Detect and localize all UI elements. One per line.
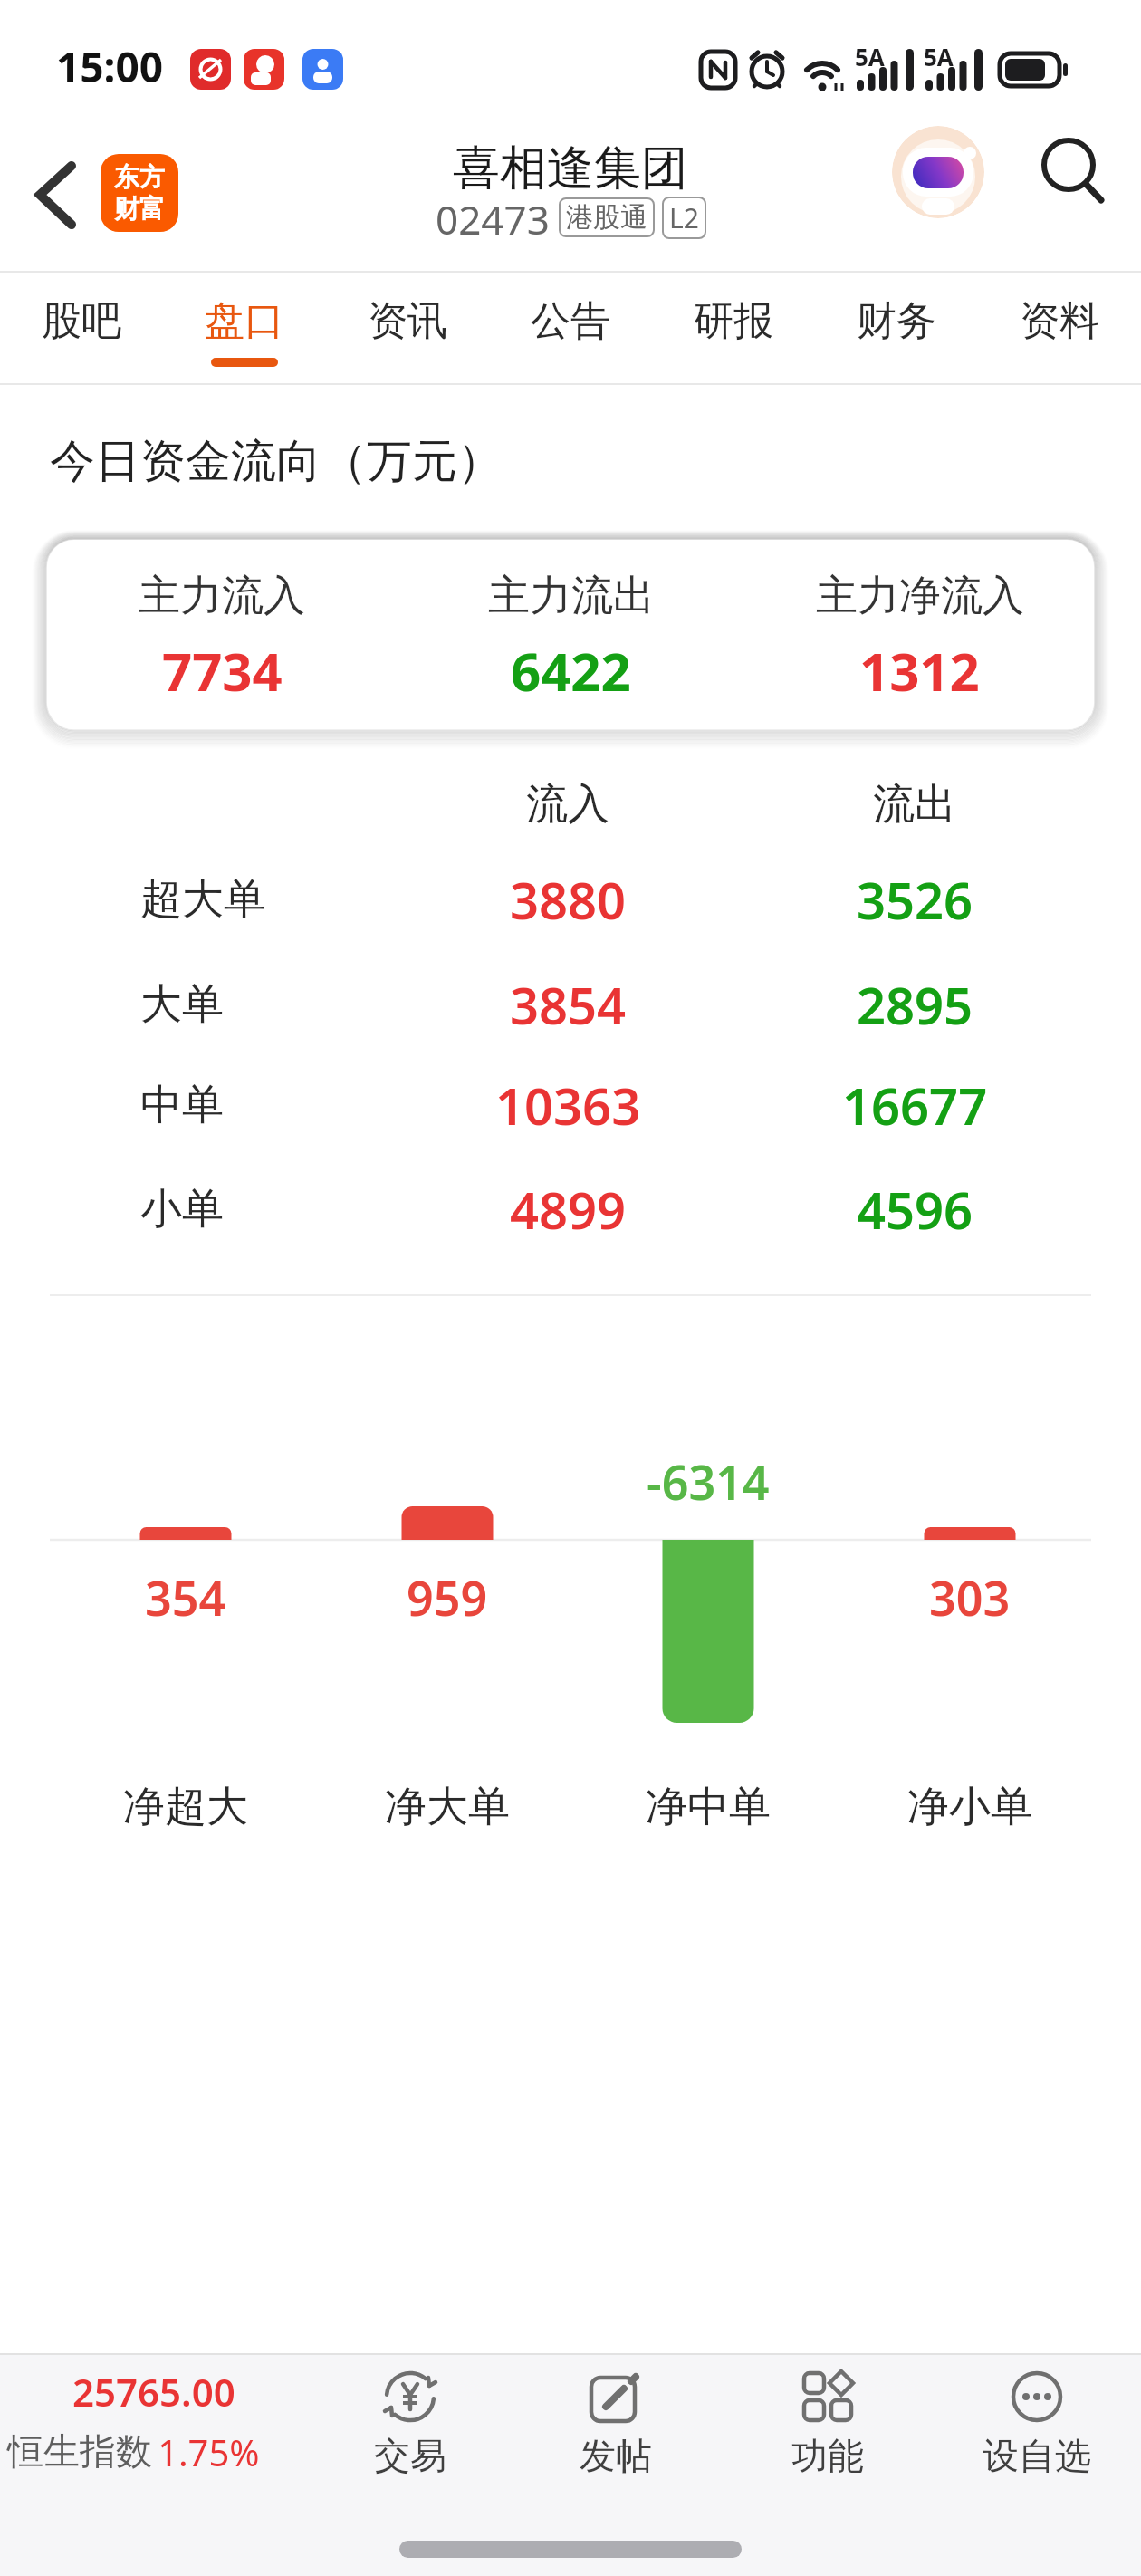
staticText: 4899 [510, 1175, 627, 1244]
staticText: -6314 [647, 1449, 770, 1514]
staticText: 股吧 [42, 296, 121, 346]
staticText: 02473 [436, 192, 550, 243]
staticText: 盘口 [205, 296, 284, 346]
staticText: 10363 [495, 1071, 641, 1139]
staticText: 1312 [859, 635, 980, 706]
staticText: 3854 [510, 970, 627, 1039]
staticText: 354 [145, 1565, 226, 1629]
staticText: 净中单 [646, 1781, 771, 1833]
button[interactable]: 25765.00 [0, 2353, 308, 2507]
staticText: 交易 [374, 2433, 446, 2478]
staticText: 发帖 [580, 2433, 652, 2478]
staticText: 25765.00 [72, 2366, 235, 2417]
staticText: 功能 [791, 2433, 864, 2478]
staticText: 15:00 [56, 38, 164, 95]
staticText: 今日资金流向（万元） [50, 433, 503, 490]
staticText: 港股通 [566, 200, 647, 235]
button[interactable]: 研报 [652, 271, 815, 385]
staticText: 资讯 [368, 296, 447, 346]
staticText: 流入 [526, 778, 609, 831]
staticText: 喜相逢集团 [453, 139, 688, 198]
staticText: 1.75% [158, 2427, 260, 2475]
staticText: 小单 [140, 1183, 224, 1235]
staticText: 研报 [694, 296, 773, 346]
button[interactable]: 功能 [746, 2362, 909, 2498]
staticText: 净小单 [907, 1781, 1032, 1833]
button[interactable]: 股吧 [0, 271, 163, 385]
button[interactable]: 发帖 [534, 2362, 697, 2498]
button[interactable]: 设自选 [955, 2362, 1118, 2498]
staticText: 超大单 [140, 873, 265, 926]
button[interactable] [892, 126, 984, 218]
staticText: 主力流出 [488, 570, 655, 622]
staticText: 959 [407, 1565, 488, 1629]
staticText: 主力流入 [139, 570, 305, 622]
staticText: 东方 [114, 161, 165, 193]
staticText: 主力净流入 [816, 570, 1024, 622]
button[interactable]: 盘口 [163, 271, 326, 385]
staticText: 资料 [1020, 296, 1099, 346]
button[interactable] [1032, 131, 1114, 213]
staticText: 4596 [857, 1175, 973, 1244]
staticText: 7734 [162, 635, 283, 706]
staticText: 大单 [140, 978, 224, 1031]
staticText: 303 [929, 1565, 1011, 1629]
staticText: 中单 [140, 1079, 224, 1131]
staticText: 恒生指数 [7, 2428, 152, 2474]
button[interactable]: 财务 [815, 271, 978, 385]
button[interactable]: 交易 [329, 2362, 492, 2498]
button[interactable]: 公告 [489, 271, 652, 385]
staticText: 5A [924, 41, 954, 72]
button[interactable] [18, 145, 91, 245]
staticText: 6422 [511, 635, 631, 706]
button[interactable]: 东方 [101, 154, 178, 232]
button[interactable]: 资料 [978, 271, 1141, 385]
staticText: 3526 [857, 865, 973, 934]
staticText: L2 [669, 199, 699, 236]
button[interactable]: 资讯 [326, 271, 489, 385]
staticText: 设自选 [983, 2433, 1091, 2478]
staticText: 净大单 [385, 1781, 510, 1833]
staticText: 5A [855, 41, 885, 72]
staticText: 16677 [842, 1071, 988, 1139]
staticText: 2895 [857, 970, 973, 1039]
staticText: 公告 [531, 296, 610, 346]
button[interactable]: 主力流入 [47, 540, 1094, 729]
staticText: 净超大 [123, 1781, 248, 1833]
staticText: 流出 [873, 778, 956, 831]
staticText: 财富 [114, 193, 165, 225]
staticText: 财务 [857, 296, 936, 346]
staticText: 3880 [510, 865, 627, 934]
